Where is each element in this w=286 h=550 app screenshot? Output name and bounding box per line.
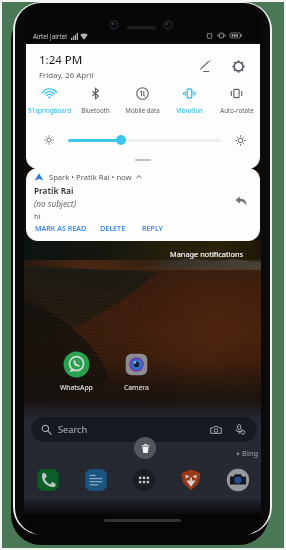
button[interactable]: Auto-rotate bbox=[213, 86, 260, 114]
staticText: Airtel|airtel bbox=[33, 32, 67, 40]
staticText: Vibration bbox=[176, 106, 203, 114]
button[interactable]: Bluetooth bbox=[72, 86, 119, 114]
button[interactable]: REPLY bbox=[138, 220, 167, 236]
staticText: DELETE bbox=[100, 223, 126, 233]
button[interactable]: Phone bbox=[24, 465, 72, 495]
staticText: WhatsApp bbox=[60, 383, 93, 392]
button[interactable]: Camera bbox=[214, 465, 261, 495]
button[interactable]: Edit bbox=[194, 55, 216, 77]
staticText: Search bbox=[58, 423, 88, 436]
staticText: REPLY bbox=[142, 223, 163, 233]
button[interactable]: Reply bbox=[230, 190, 252, 212]
button[interactable]: Vibration bbox=[166, 86, 213, 114]
button[interactable]: Search bbox=[31, 417, 257, 442]
staticText: Camera bbox=[124, 383, 149, 392]
button[interactable]: Manage notifications bbox=[170, 249, 244, 259]
button[interactable]: Mobile data bbox=[119, 86, 166, 114]
staticText: Bing bbox=[242, 448, 259, 458]
staticText: hi bbox=[34, 211, 41, 221]
staticText: 1:24 PM bbox=[39, 52, 83, 68]
button[interactable]: DELETE bbox=[96, 220, 130, 236]
staticText: 91springboard bbox=[28, 106, 71, 114]
button[interactable]: MARK AS READ bbox=[31, 220, 91, 236]
button[interactable]: Camera bbox=[113, 351, 160, 392]
staticText: Auto-rotate bbox=[220, 106, 254, 114]
staticText: Bluetooth bbox=[81, 106, 110, 114]
staticText: Pratik Rai bbox=[34, 185, 74, 196]
button[interactable]: Messages bbox=[72, 465, 120, 495]
button[interactable]: Brave bbox=[167, 465, 214, 495]
button[interactable]: WhatsApp bbox=[53, 351, 100, 392]
button[interactable]: Remove bbox=[134, 437, 156, 459]
button[interactable]: Settings bbox=[227, 55, 249, 77]
staticText: Spark • Pratik Rai • now bbox=[49, 172, 132, 182]
staticText: MARK AS READ bbox=[35, 223, 87, 233]
staticText: Friday, 26 April bbox=[39, 70, 94, 81]
staticText: (no subject) bbox=[34, 198, 77, 209]
button[interactable]: 91springboard bbox=[26, 86, 72, 114]
staticText: Mobile data bbox=[125, 106, 160, 114]
button[interactable]: All apps bbox=[120, 465, 167, 495]
